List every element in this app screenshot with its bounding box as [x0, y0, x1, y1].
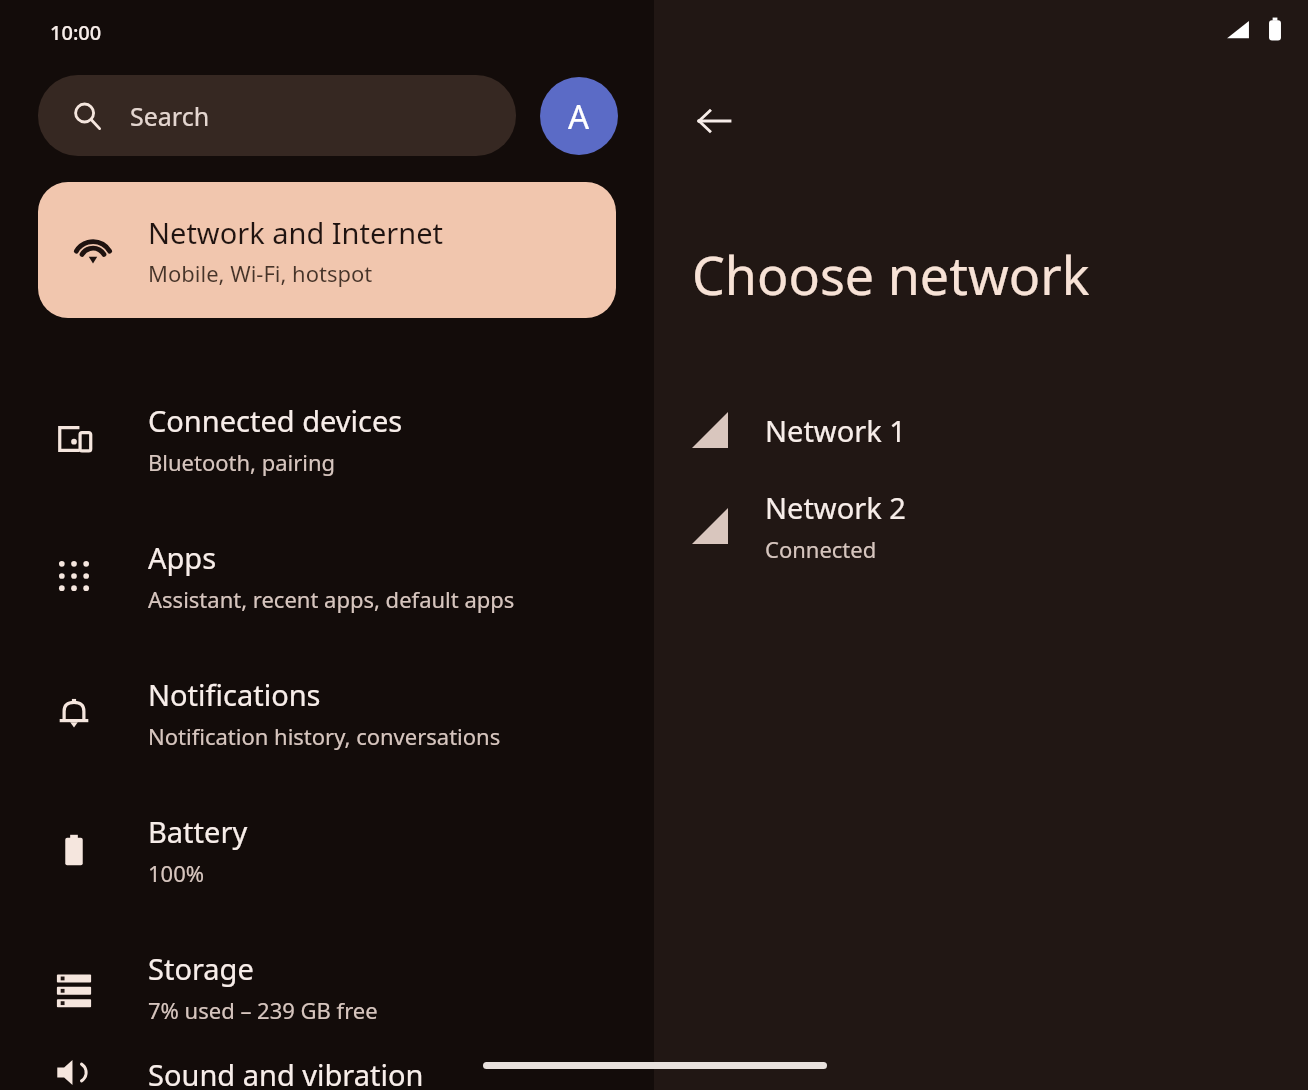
- staticText: Network 1: [765, 411, 906, 450]
- staticText: 10:00: [50, 19, 102, 46]
- staticText: Sound and vibration: [148, 1055, 424, 1090]
- button[interactable]: Storage: [0, 918, 654, 1055]
- button[interactable]: Back: [678, 85, 750, 157]
- staticText: Choose network: [692, 239, 1090, 310]
- staticText: 7% used – 239 GB free: [148, 995, 378, 1025]
- staticText: Apps: [148, 538, 217, 577]
- staticText: Assistant, recent apps, default apps: [148, 584, 515, 614]
- button[interactable]: Account: [540, 77, 618, 155]
- staticText: Notification history, conversations: [148, 721, 501, 751]
- button[interactable]: Search: [38, 75, 516, 156]
- staticText: 100%: [148, 858, 205, 888]
- button[interactable]: Sound and vibration: [0, 1055, 654, 1090]
- staticText: Mobile, Wi-Fi, hotspot: [148, 258, 373, 288]
- staticText: Connected: [765, 534, 877, 564]
- button[interactable]: Network 2: [654, 478, 1308, 574]
- staticText: Search: [130, 99, 210, 133]
- staticText: Bluetooth, pairing: [148, 447, 336, 477]
- button[interactable]: Network and Internet: [38, 182, 616, 318]
- staticText: Battery: [148, 812, 248, 851]
- staticText: Network 2: [765, 488, 906, 527]
- staticText: Network and Internet: [148, 213, 444, 252]
- button[interactable]: Battery: [0, 781, 654, 918]
- button[interactable]: Apps: [0, 507, 654, 644]
- button[interactable]: Network 1: [654, 382, 1308, 478]
- button[interactable]: Notifications: [0, 644, 654, 781]
- button[interactable]: Connected devices: [0, 370, 654, 507]
- staticText: Storage: [148, 949, 254, 988]
- staticText: Notifications: [148, 675, 321, 714]
- staticText: Connected devices: [148, 401, 403, 440]
- staticText: A: [568, 94, 590, 139]
